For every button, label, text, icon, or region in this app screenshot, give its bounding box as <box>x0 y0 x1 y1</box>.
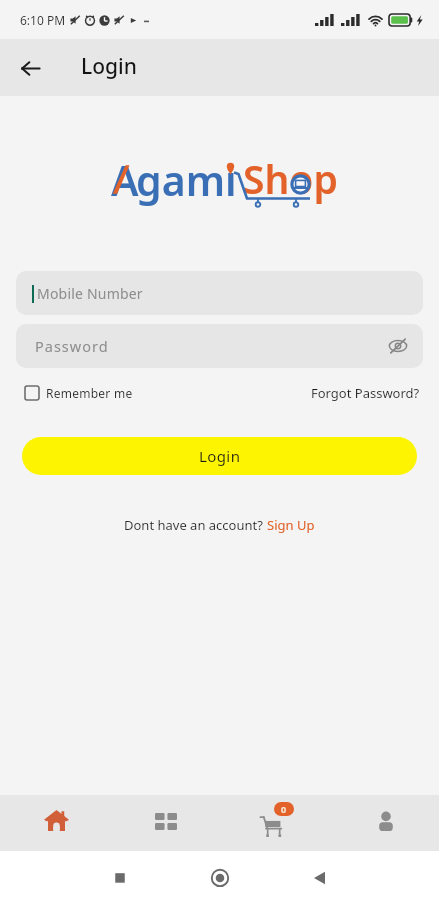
button[interactable]: Profile <box>329 795 439 851</box>
staticText: Password <box>35 336 109 356</box>
staticText: gami <box>136 152 237 208</box>
button[interactable]: Mobile Number <box>16 271 423 315</box>
staticText: Forgot Password? <box>311 384 420 402</box>
staticText: 6:10 PM <box>20 12 66 28</box>
staticText: A <box>111 152 139 208</box>
button[interactable]: Home <box>0 795 109 851</box>
button[interactable]: Sign Up <box>267 516 315 534</box>
button[interactable]: Show password <box>385 333 411 359</box>
staticText: Shop <box>243 152 338 205</box>
staticText: Remember me <box>46 385 133 401</box>
staticText: Sign Up <box>267 516 315 534</box>
staticText: Dont have an account? <box>124 516 267 534</box>
button[interactable]: Back <box>13 51 47 85</box>
button[interactable]: Login <box>22 437 417 475</box>
staticText: 0 <box>281 803 287 815</box>
button[interactable]: Remember me <box>25 385 133 401</box>
staticText: Login <box>199 446 241 466</box>
button[interactable]: Forgot Password? <box>311 384 420 402</box>
staticText: Login <box>81 52 137 81</box>
staticText: Mobile Number <box>37 284 143 303</box>
button[interactable]: Password <box>16 324 423 368</box>
button[interactable]: Cart <box>219 795 329 851</box>
button[interactable]: Categories <box>109 795 219 851</box>
